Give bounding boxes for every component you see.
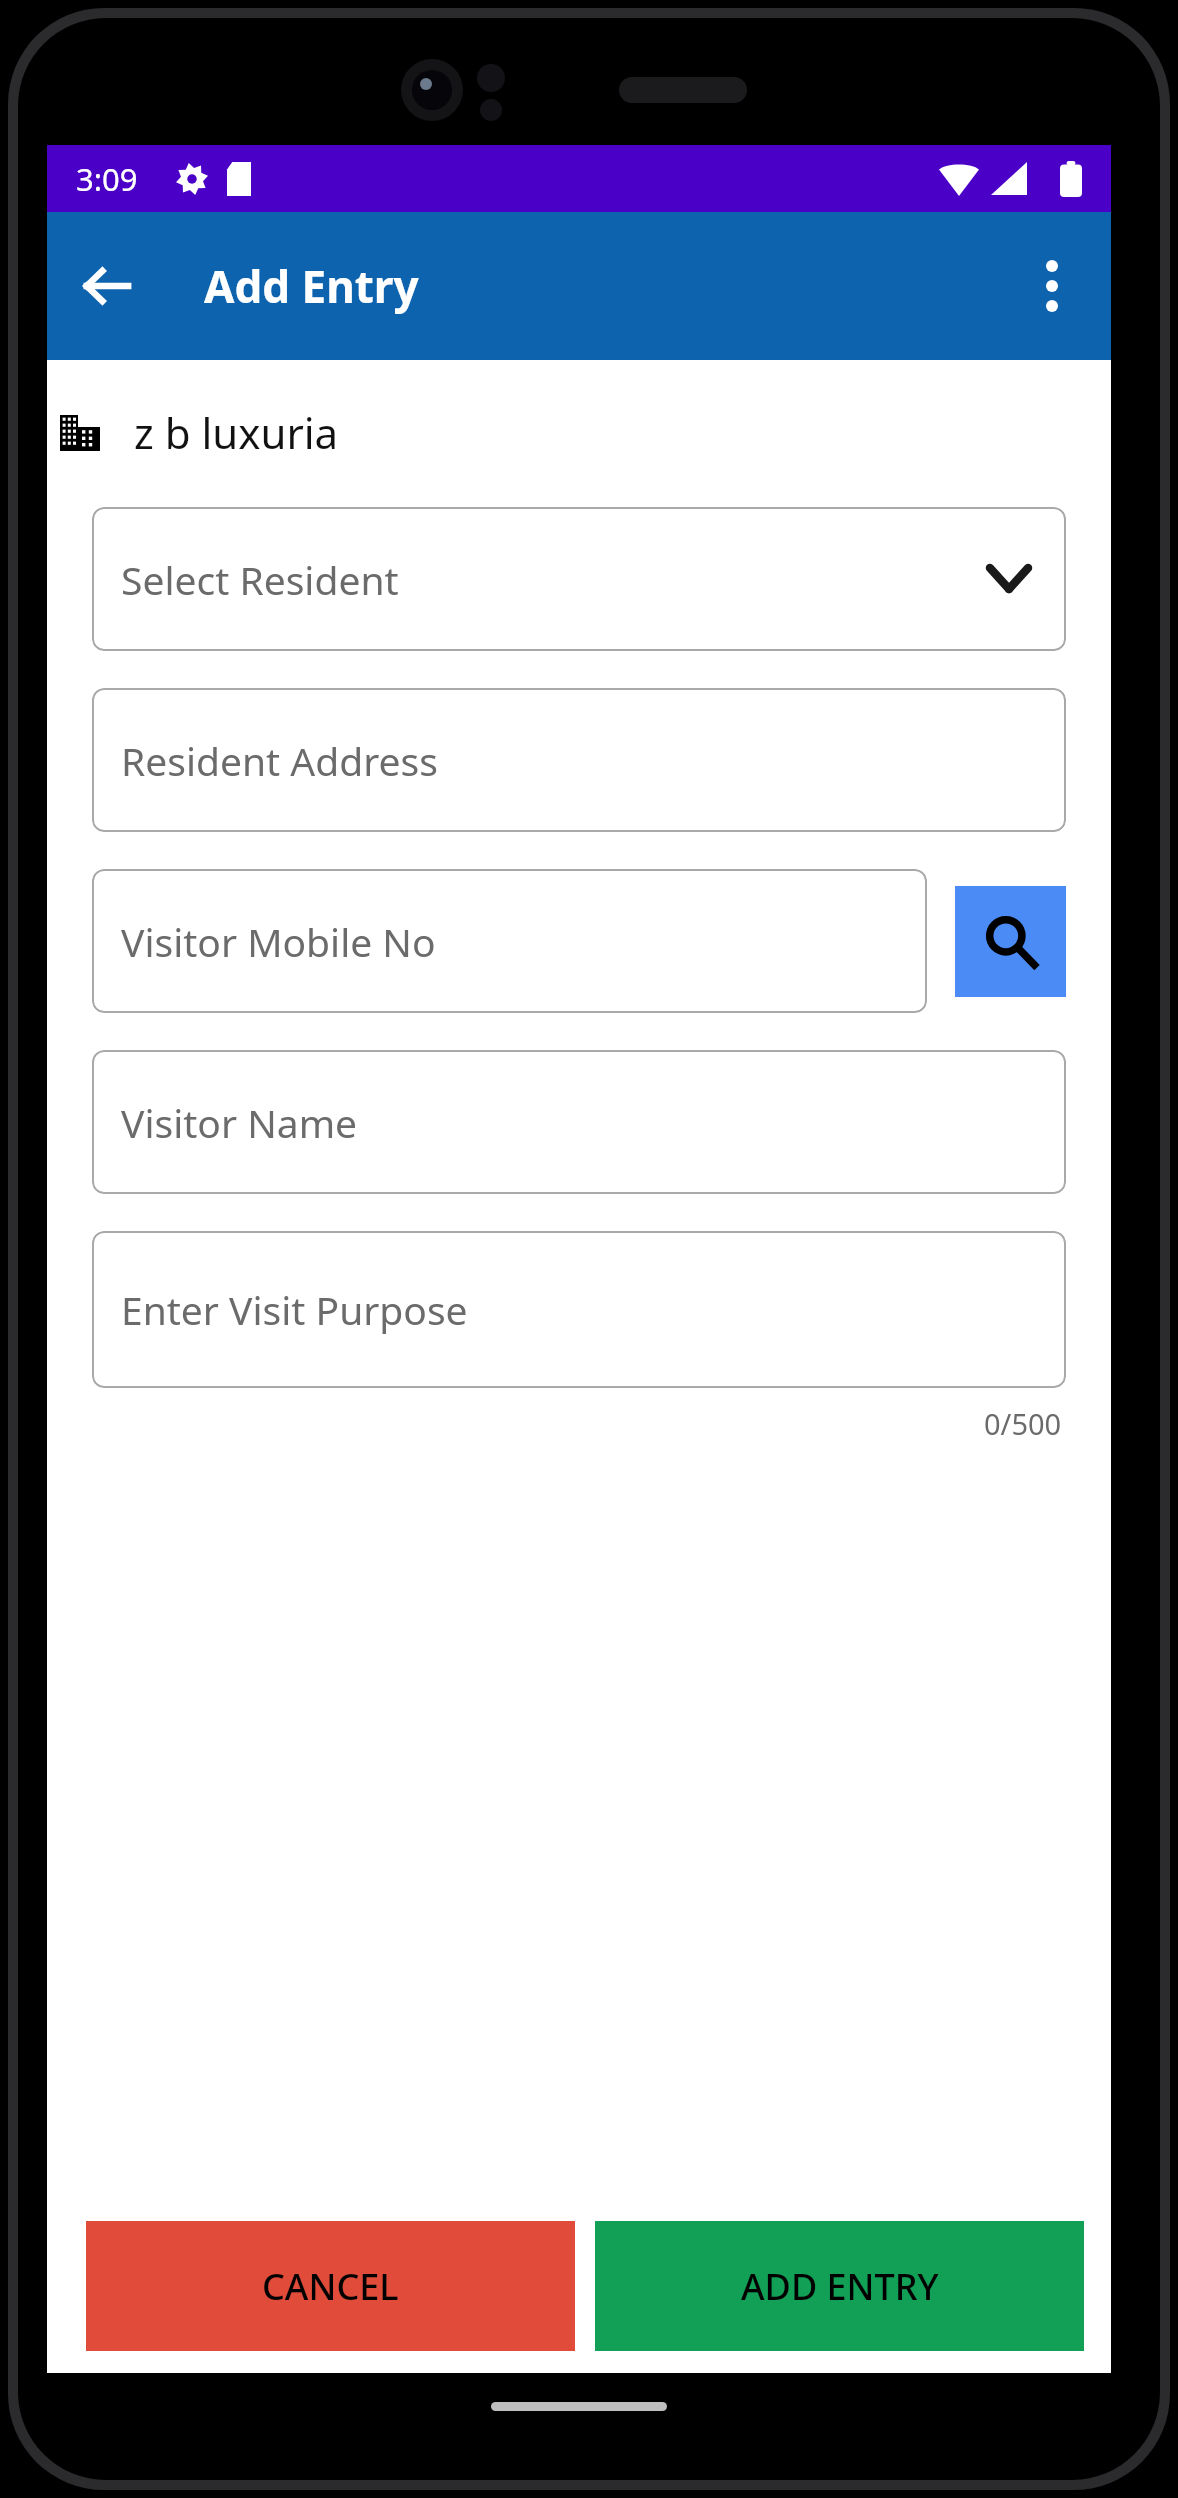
staticText: Add Entry	[204, 256, 419, 316]
staticText: CANCEL	[262, 2262, 399, 2311]
button[interactable]: Select Resident	[92, 507, 1066, 651]
button[interactable]: Back	[59, 238, 155, 334]
button[interactable]: Visitor Mobile No	[92, 869, 927, 1013]
button[interactable]: More options	[1007, 241, 1097, 331]
button[interactable]: Enter Visit Purpose	[92, 1231, 1066, 1388]
staticText: Resident Address	[121, 734, 438, 787]
staticText: Select Resident	[121, 553, 399, 606]
button[interactable]: Resident Address	[92, 688, 1066, 832]
button[interactable]: Visitor Name	[92, 1050, 1066, 1194]
staticText: Enter Visit Purpose	[121, 1283, 468, 1336]
button[interactable]: ADD ENTRY	[595, 2221, 1084, 2351]
staticText: z b luxuria	[134, 404, 339, 461]
staticText: ADD ENTRY	[741, 2262, 939, 2311]
button[interactable]: CANCEL	[86, 2221, 575, 2351]
staticText: Visitor Mobile No	[121, 915, 436, 968]
button[interactable]: Search	[955, 886, 1066, 997]
staticText: 3:09	[76, 158, 138, 200]
staticText: 0/500	[984, 1404, 1062, 1443]
staticText: Visitor Name	[121, 1096, 358, 1149]
